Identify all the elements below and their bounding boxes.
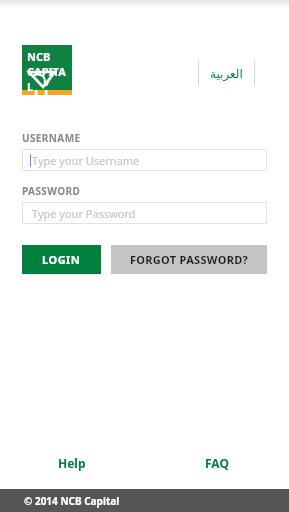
- staticText: CAPITAL: [27, 64, 72, 94]
- other: NCB Capital logo: [22, 45, 72, 95]
- staticText: NCB: [27, 49, 51, 64]
- button[interactable]: LOGIN: [22, 245, 101, 274]
- button[interactable]: العربية: [199, 60, 254, 87]
- staticText: Type your Password: [32, 206, 136, 221]
- button[interactable]: Help: [46, 451, 98, 475]
- staticText: FORGOT PASSWORD?: [130, 252, 249, 267]
- button[interactable]: Type your Username: [22, 149, 267, 171]
- staticText: Help: [58, 455, 86, 471]
- staticText: العربية: [210, 67, 243, 81]
- button[interactable]: FORGOT PASSWORD?: [111, 245, 267, 274]
- staticText: USERNAME: [22, 131, 81, 145]
- staticText: FAQ: [205, 455, 229, 471]
- staticText: PASSWORD: [22, 184, 81, 198]
- button[interactable]: FAQ: [193, 451, 241, 475]
- button[interactable]: Type your Password: [22, 202, 267, 224]
- staticText: © 2014 NCB Capital: [24, 494, 120, 508]
- staticText: Type your Username: [32, 153, 140, 168]
- staticText: LOGIN: [42, 252, 81, 267]
